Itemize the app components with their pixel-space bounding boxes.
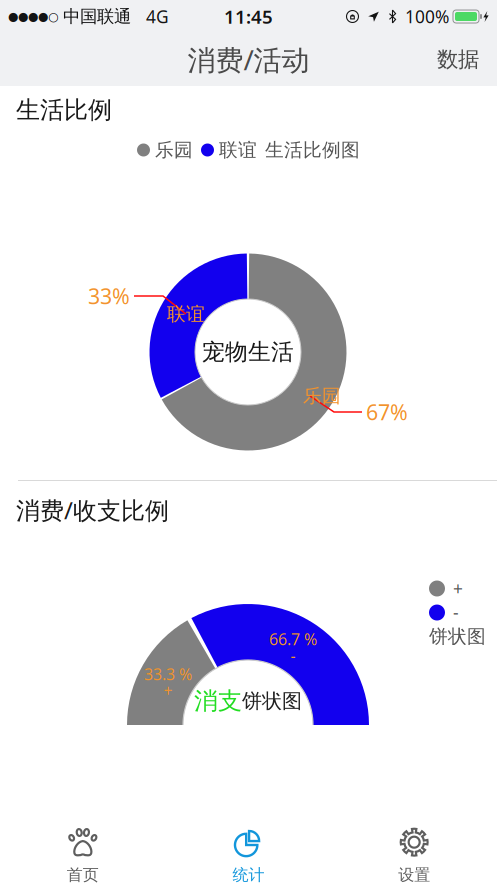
- staticText: 乐园: [155, 138, 193, 161]
- staticText: 联谊: [219, 138, 257, 161]
- staticText: 消费/活动: [187, 41, 309, 78]
- staticText: 首页: [67, 865, 99, 883]
- staticText: 饼状图: [429, 625, 486, 648]
- staticText: 联谊: [167, 302, 205, 325]
- button[interactable]: 首页: [0, 813, 166, 883]
- staticText: 设置: [398, 865, 430, 883]
- staticText: 11:45: [224, 4, 273, 29]
- staticText: 饼状图: [242, 689, 302, 713]
- staticText: -: [453, 601, 459, 624]
- staticText: 乐园: [303, 384, 341, 407]
- staticText: 生活比例: [16, 95, 112, 125]
- staticText: 消费/收支比例: [16, 494, 169, 526]
- staticText: 统计: [232, 865, 264, 883]
- staticText: 消支: [194, 686, 242, 716]
- staticText: 33%: [88, 282, 130, 310]
- staticText: 中国联通: [58, 6, 131, 27]
- staticText: 100%: [405, 5, 449, 28]
- staticText: ●●●●○: [8, 10, 58, 23]
- staticText: +: [453, 577, 463, 600]
- button[interactable]: 设置: [331, 813, 497, 883]
- staticText: -: [290, 645, 295, 666]
- staticText: 宠物生活: [202, 338, 294, 366]
- staticText: +: [163, 680, 172, 701]
- staticText: 数据: [437, 46, 479, 73]
- button[interactable]: 统计: [166, 813, 331, 883]
- staticText: 33.3 %: [144, 663, 192, 685]
- button[interactable]: 数据: [419, 32, 497, 87]
- staticText: 4G: [131, 5, 169, 28]
- staticText: 67%: [366, 398, 408, 426]
- staticText: 66.7 %: [269, 628, 317, 650]
- staticText: 生活比例图: [265, 138, 360, 161]
